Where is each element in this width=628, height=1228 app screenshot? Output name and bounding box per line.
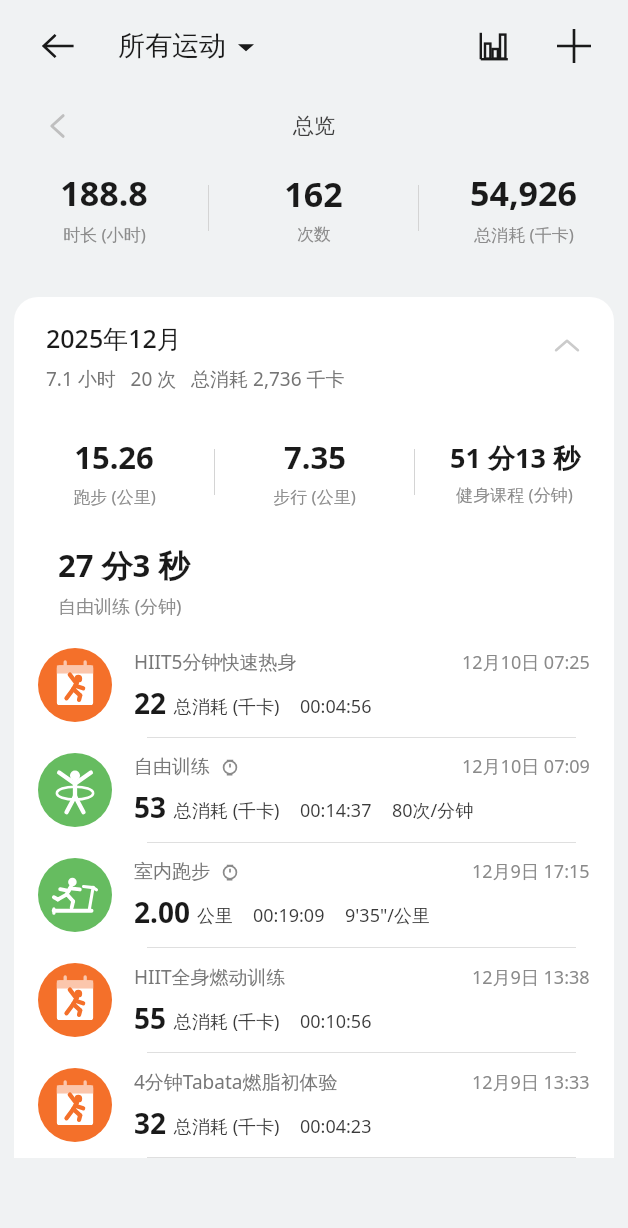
staticText: 自由训练 (分钟) bbox=[58, 594, 182, 619]
staticText: 12月9日 13:38 bbox=[472, 965, 590, 990]
staticText: 总消耗 (千卡) bbox=[174, 1114, 280, 1139]
staticText: 室内跑步 bbox=[134, 860, 210, 884]
staticText: 32 bbox=[134, 1104, 167, 1142]
staticText: 53 bbox=[134, 788, 167, 826]
staticText: 总消耗 (千卡) bbox=[174, 694, 280, 719]
button[interactable]: 自由训练 bbox=[14, 738, 614, 843]
staticText: 自由训练 bbox=[134, 755, 210, 779]
staticText: 健身课程 (分钟) bbox=[456, 483, 573, 506]
staticText: 9'35"/公里 bbox=[345, 903, 430, 928]
staticText: 总消耗 (千卡) bbox=[174, 1009, 280, 1034]
button[interactable]: HIIT全身燃动训练 bbox=[14, 948, 614, 1053]
staticText: 00:04:23 bbox=[300, 1114, 372, 1139]
staticText: 54,926 bbox=[470, 170, 577, 216]
staticText: 跑步 (公里) bbox=[73, 485, 156, 508]
staticText: 12月9日 17:15 bbox=[472, 859, 590, 884]
staticText: 55 bbox=[134, 999, 167, 1037]
staticText: 15.26 bbox=[74, 436, 154, 478]
staticText: 12月10日 07:25 bbox=[462, 650, 590, 675]
button[interactable]: Add bbox=[548, 20, 600, 72]
staticText: 2.00 bbox=[134, 893, 190, 931]
button[interactable]: 室内跑步 bbox=[14, 843, 614, 948]
staticText: 总消耗 (千卡) bbox=[174, 798, 280, 823]
button[interactable]: Back bbox=[30, 18, 86, 74]
button[interactable]: 所有运动 bbox=[118, 29, 254, 63]
staticText: 162 bbox=[284, 171, 343, 217]
staticText: 4分钟Tabata燃脂初体验 bbox=[134, 1069, 338, 1095]
staticText: 188.8 bbox=[60, 170, 148, 216]
staticText: 步行 (公里) bbox=[273, 485, 356, 508]
staticText: 时长 (小时) bbox=[63, 223, 146, 246]
staticText: 12月9日 13:33 bbox=[472, 1070, 590, 1095]
staticText: 次数 bbox=[297, 224, 331, 245]
staticText: 总消耗 (千卡) bbox=[474, 223, 574, 246]
staticText: 7.35 bbox=[284, 436, 346, 478]
staticText: 00:14:37 bbox=[300, 798, 372, 823]
staticText: 00:19:09 bbox=[253, 903, 325, 928]
staticText: HIIT全身燃动训练 bbox=[134, 964, 286, 990]
staticText: HIIT5分钟快速热身 bbox=[134, 649, 297, 675]
button[interactable]: 4分钟Tabata燃脂初体验 bbox=[14, 1053, 614, 1158]
staticText: 27 分3 秒 bbox=[58, 544, 190, 586]
staticText: 12月10日 07:09 bbox=[462, 754, 590, 779]
staticText: 22 bbox=[134, 684, 167, 722]
button[interactable]: HIIT5分钟快速热身 bbox=[14, 633, 614, 738]
staticText: 7.1 小时 20 次 总消耗 2,736 千卡 bbox=[46, 366, 345, 392]
staticText: 00:04:56 bbox=[300, 694, 372, 719]
staticText: 所有运动 bbox=[118, 29, 226, 63]
staticText: 51 分13 秒 bbox=[450, 439, 580, 476]
staticText: 公里 bbox=[197, 905, 233, 928]
staticText: 00:10:56 bbox=[300, 1009, 372, 1034]
button[interactable]: Statistics bbox=[468, 20, 520, 72]
button[interactable]: Previous bbox=[34, 102, 82, 150]
staticText: 总览 bbox=[293, 113, 335, 139]
staticText: 2025年12月 bbox=[46, 321, 182, 355]
button[interactable]: Collapse bbox=[544, 323, 590, 369]
staticText: 80次/分钟 bbox=[392, 798, 474, 823]
